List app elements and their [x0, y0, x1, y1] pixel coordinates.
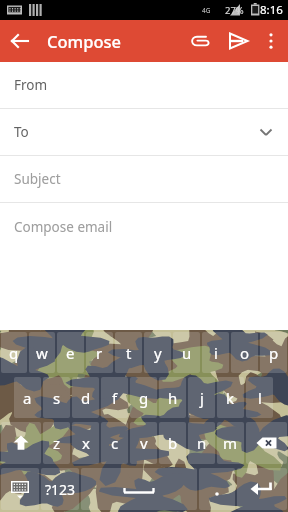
button[interactable]: To: [0, 109, 288, 156]
button[interactable]: Space: [81, 468, 197, 510]
button[interactable]: r: [86, 332, 113, 373]
button[interactable]: y: [144, 332, 171, 373]
button[interactable]: Attach file: [181, 22, 219, 60]
button[interactable]: Backspace: [246, 422, 287, 464]
button[interactable]: g: [130, 377, 157, 418]
button[interactable]: Period: [199, 468, 235, 510]
staticText: From: [14, 76, 48, 94]
button[interactable]: l: [246, 377, 273, 418]
staticText: Subject: [14, 170, 61, 188]
button[interactable]: w: [29, 332, 55, 373]
staticText: k: [226, 388, 235, 408]
button[interactable]: s: [43, 377, 70, 418]
button[interactable]: From: [0, 62, 288, 109]
button[interactable]: b: [159, 422, 186, 464]
staticText: 27%: [225, 4, 244, 17]
button[interactable]: d: [72, 377, 99, 418]
staticText: d: [81, 388, 91, 408]
button[interactable]: Shift: [1, 422, 41, 464]
staticText: c: [111, 433, 119, 453]
button[interactable]: Send: [219, 22, 257, 60]
button[interactable]: x: [72, 422, 99, 464]
staticText: t: [126, 343, 132, 363]
staticText: p: [269, 343, 279, 363]
staticText: Compose: [47, 30, 121, 52]
staticText: w: [36, 343, 48, 363]
button[interactable]: c: [101, 422, 128, 464]
button[interactable]: Enter: [237, 468, 287, 510]
button[interactable]: p: [260, 332, 287, 373]
button[interactable]: t: [115, 332, 142, 373]
button[interactable]: j: [188, 377, 215, 418]
staticText: o: [240, 343, 250, 363]
staticText: 8:16: [260, 2, 283, 18]
staticText: x: [82, 433, 90, 453]
button[interactable]: Back: [0, 20, 42, 62]
staticText: e: [66, 343, 75, 363]
button[interactable]: a: [14, 377, 41, 418]
staticText: g: [139, 388, 149, 408]
button[interactable]: z: [43, 422, 70, 464]
button[interactable]: f: [101, 377, 128, 418]
staticText: l: [258, 388, 262, 408]
button[interactable]: o: [231, 332, 258, 373]
button[interactable]: e: [57, 332, 84, 373]
button[interactable]: Change keyboard: [1, 468, 39, 510]
staticText: v: [140, 433, 148, 453]
button[interactable]: i: [202, 332, 229, 373]
staticText: s: [53, 388, 61, 408]
staticText: j: [200, 388, 204, 408]
staticText: 4G: [202, 6, 211, 15]
button[interactable]: u: [173, 332, 200, 373]
button[interactable]: k: [217, 377, 244, 418]
button[interactable]: Subject: [0, 156, 288, 203]
button[interactable]: Compose email: [0, 203, 288, 330]
staticText: y: [154, 343, 162, 363]
button[interactable]: q: [1, 332, 27, 373]
button[interactable]: m: [217, 422, 244, 464]
staticText: n: [197, 433, 207, 453]
staticText: q: [9, 343, 19, 363]
button[interactable]: v: [130, 422, 157, 464]
button[interactable]: n: [188, 422, 215, 464]
staticText: m: [223, 433, 238, 453]
staticText: i: [214, 343, 218, 363]
button[interactable]: h: [159, 377, 186, 418]
staticText: f: [112, 388, 118, 408]
staticText: h: [168, 388, 178, 408]
button[interactable]: More options: [257, 27, 285, 55]
staticText: b: [168, 433, 178, 453]
button[interactable]: ?123: [41, 468, 79, 510]
staticText: ?123: [45, 480, 76, 499]
staticText: z: [53, 433, 61, 453]
staticText: a: [23, 388, 32, 408]
staticText: r: [96, 343, 103, 363]
staticText: Compose email: [14, 218, 113, 236]
staticText: u: [182, 343, 192, 363]
staticText: To: [14, 123, 29, 141]
